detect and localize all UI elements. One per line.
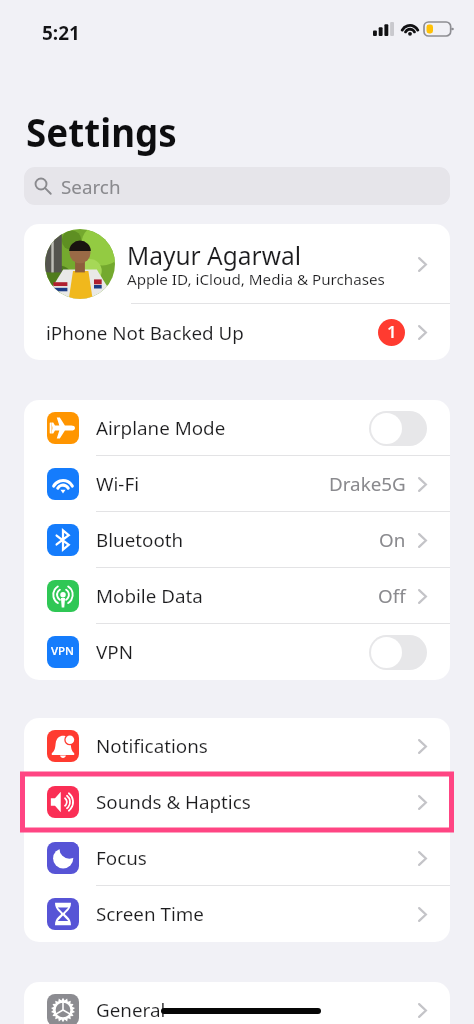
button[interactable]: Mayur Agarwal bbox=[24, 224, 450, 304]
button[interactable]: General bbox=[24, 982, 450, 1024]
staticText: 5:21 bbox=[42, 20, 80, 46]
button[interactable]: Airplane Mode bbox=[24, 400, 450, 456]
staticText: Bluetooth bbox=[96, 527, 184, 553]
staticText: Notifications bbox=[96, 733, 208, 759]
staticText: iPhone Not Backed Up bbox=[46, 320, 244, 346]
staticText: VPN bbox=[96, 639, 133, 665]
staticText: Wi-Fi bbox=[96, 471, 139, 497]
button[interactable]: Focus bbox=[24, 830, 450, 886]
staticText: Search bbox=[61, 174, 121, 200]
staticText: On bbox=[379, 527, 406, 553]
button[interactable]: Screen Time bbox=[24, 886, 450, 942]
button[interactable]: Bluetooth bbox=[24, 512, 450, 568]
staticText: Sounds & Haptics bbox=[96, 789, 251, 815]
button[interactable]: Notifications bbox=[24, 718, 450, 774]
button[interactable]: Mobile Data bbox=[24, 568, 450, 624]
button[interactable]: Search bbox=[24, 167, 450, 205]
staticText: Off bbox=[378, 583, 406, 609]
staticText: 1 bbox=[387, 320, 397, 343]
staticText: Focus bbox=[96, 845, 147, 871]
button[interactable]: VPN bbox=[24, 624, 450, 680]
button[interactable]: Wi-Fi bbox=[24, 456, 450, 512]
staticText: Mobile Data bbox=[96, 583, 203, 609]
button[interactable]: Sounds & Haptics bbox=[24, 774, 450, 830]
staticText: VPN bbox=[51, 643, 75, 659]
staticText: Screen Time bbox=[96, 901, 204, 927]
staticText: Settings bbox=[26, 104, 177, 158]
staticText: Mayur Agarwal bbox=[127, 239, 301, 272]
staticText: Drake5G bbox=[329, 471, 406, 497]
button[interactable]: iPhone Not Backed Up bbox=[24, 304, 450, 360]
staticText: General bbox=[96, 997, 166, 1023]
staticText: Airplane Mode bbox=[96, 415, 226, 441]
staticText: Apple ID, iCloud, Media & Purchases bbox=[127, 269, 385, 290]
